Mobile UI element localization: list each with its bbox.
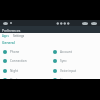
staticText: Display [10,78,21,82]
staticText: Storage [60,78,72,82]
button[interactable]: Voice input [50,66,100,75]
button[interactable]: Display [0,75,50,84]
button[interactable]: Connection [0,56,50,65]
staticText: Apps [2,34,9,38]
staticText: Preferences [2,28,21,32]
staticText: Sync [60,59,67,63]
button[interactable]: Phone [0,47,50,56]
button[interactable]: Storage [50,75,100,84]
staticText: General [2,40,15,45]
staticText: Settings [13,34,25,38]
button[interactable]: Sync [50,56,100,65]
staticText: Account [60,50,72,54]
button[interactable]: Settings [13,34,25,38]
staticText: Night [10,69,19,73]
button[interactable]: Account [50,47,100,56]
staticText: Phone [10,50,20,54]
button[interactable]: Apps [2,34,9,38]
staticText: Connection [10,59,27,63]
button[interactable]: Night [0,66,50,75]
staticText: Voice input [60,69,77,73]
